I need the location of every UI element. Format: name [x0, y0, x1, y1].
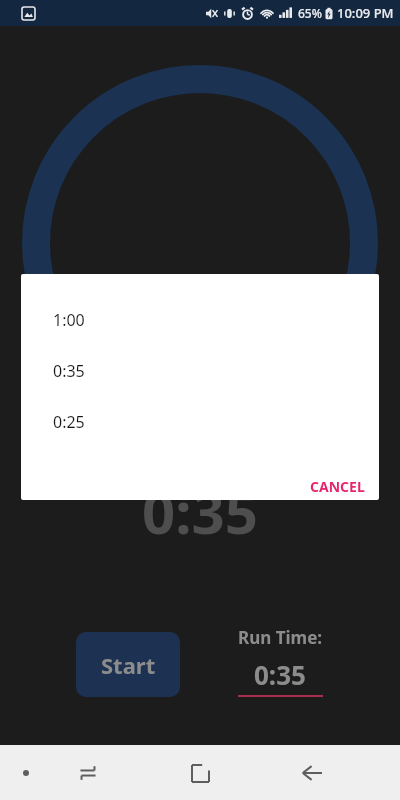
- button[interactable]: CANCEL: [296, 469, 379, 500]
- staticText: 0:35: [0, 472, 400, 551]
- button[interactable]: Run Time:: [225, 626, 335, 697]
- staticText: 10:09 PM: [337, 4, 394, 22]
- staticText: 0:25: [53, 411, 85, 433]
- staticText: 0:35: [53, 360, 85, 382]
- staticText: Start: [101, 650, 156, 680]
- button[interactable]: 0:35: [21, 345, 379, 396]
- button[interactable]: 1:00: [21, 294, 379, 345]
- button[interactable]: Recent apps: [176, 749, 224, 797]
- button[interactable]: Switch apps: [66, 751, 110, 795]
- staticText: 65%: [298, 5, 322, 21]
- button[interactable]: Start: [76, 632, 180, 697]
- button[interactable]: 0:25: [21, 396, 379, 447]
- staticText: 0:35: [254, 657, 306, 692]
- button[interactable]: Back: [288, 749, 336, 797]
- staticText: Run Time:: [238, 626, 323, 649]
- button[interactable]: Menu: [4, 751, 48, 795]
- staticText: CANCEL: [310, 477, 365, 492]
- staticText: 1:00: [53, 309, 85, 331]
